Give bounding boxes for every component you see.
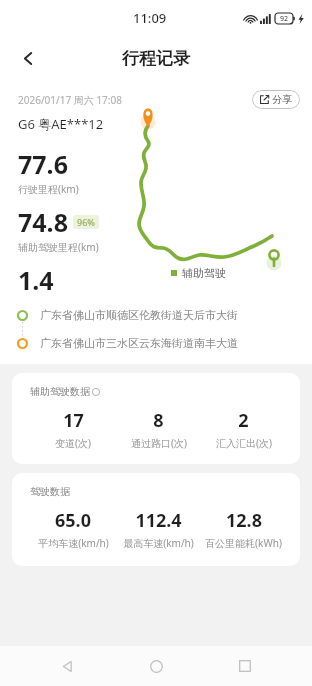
button[interactable]: Recent apps	[223, 646, 267, 686]
staticText: 最高车速(km/h)	[123, 536, 194, 550]
staticText: 112.4	[135, 508, 182, 533]
staticText: 通过路口(次)	[131, 436, 187, 450]
button[interactable]: 65.0	[30, 508, 116, 550]
button[interactable]: 分享	[252, 90, 300, 109]
staticText: 1.4	[18, 263, 54, 297]
staticText: 92	[280, 14, 289, 24]
staticText: 分享	[272, 93, 292, 106]
button[interactable]: Back	[10, 40, 46, 76]
staticText: G6 粤AE***12	[18, 115, 104, 133]
staticText: 辅助驾驶数据	[30, 385, 90, 398]
staticText: 广东省佛山市三水区云东海街道南丰大道	[40, 336, 238, 350]
staticText: 8	[153, 408, 164, 433]
staticText: 驾驶数据	[30, 485, 70, 498]
staticText: 汇入汇出(次)	[216, 436, 272, 450]
staticText: 12.8	[226, 508, 262, 533]
staticText: 变道(次)	[55, 436, 91, 450]
staticText: 96%	[77, 216, 95, 228]
staticText: 74.8	[18, 205, 68, 239]
staticText: 辅助驾驶	[182, 266, 226, 280]
staticText: 行程记录	[122, 48, 190, 69]
staticText: 17	[63, 408, 84, 433]
button[interactable]: 12.8	[201, 508, 286, 550]
staticText: 2026/01/17 周六 17:08	[18, 93, 122, 107]
staticText: 广东省佛山市顺德区伦教街道天后市大街	[40, 308, 238, 322]
staticText: 2	[238, 408, 249, 433]
staticText: 百公里能耗(kWh)	[205, 536, 282, 550]
button[interactable]: 112.4	[116, 508, 201, 550]
button[interactable]: 17	[30, 408, 116, 450]
button[interactable]: 2	[201, 408, 286, 450]
staticText: 平均车速(km/h)	[38, 536, 109, 550]
staticText: 11:09	[133, 9, 167, 27]
button[interactable]: 8	[116, 408, 201, 450]
button[interactable]: Home	[134, 646, 178, 686]
staticText: 65.0	[55, 508, 91, 533]
button[interactable]: Back	[45, 646, 89, 686]
staticText: 行驶里程(km)	[18, 182, 79, 196]
staticText: 77.6	[18, 147, 68, 181]
staticText: 辅助驾驶里程(km)	[18, 240, 99, 254]
